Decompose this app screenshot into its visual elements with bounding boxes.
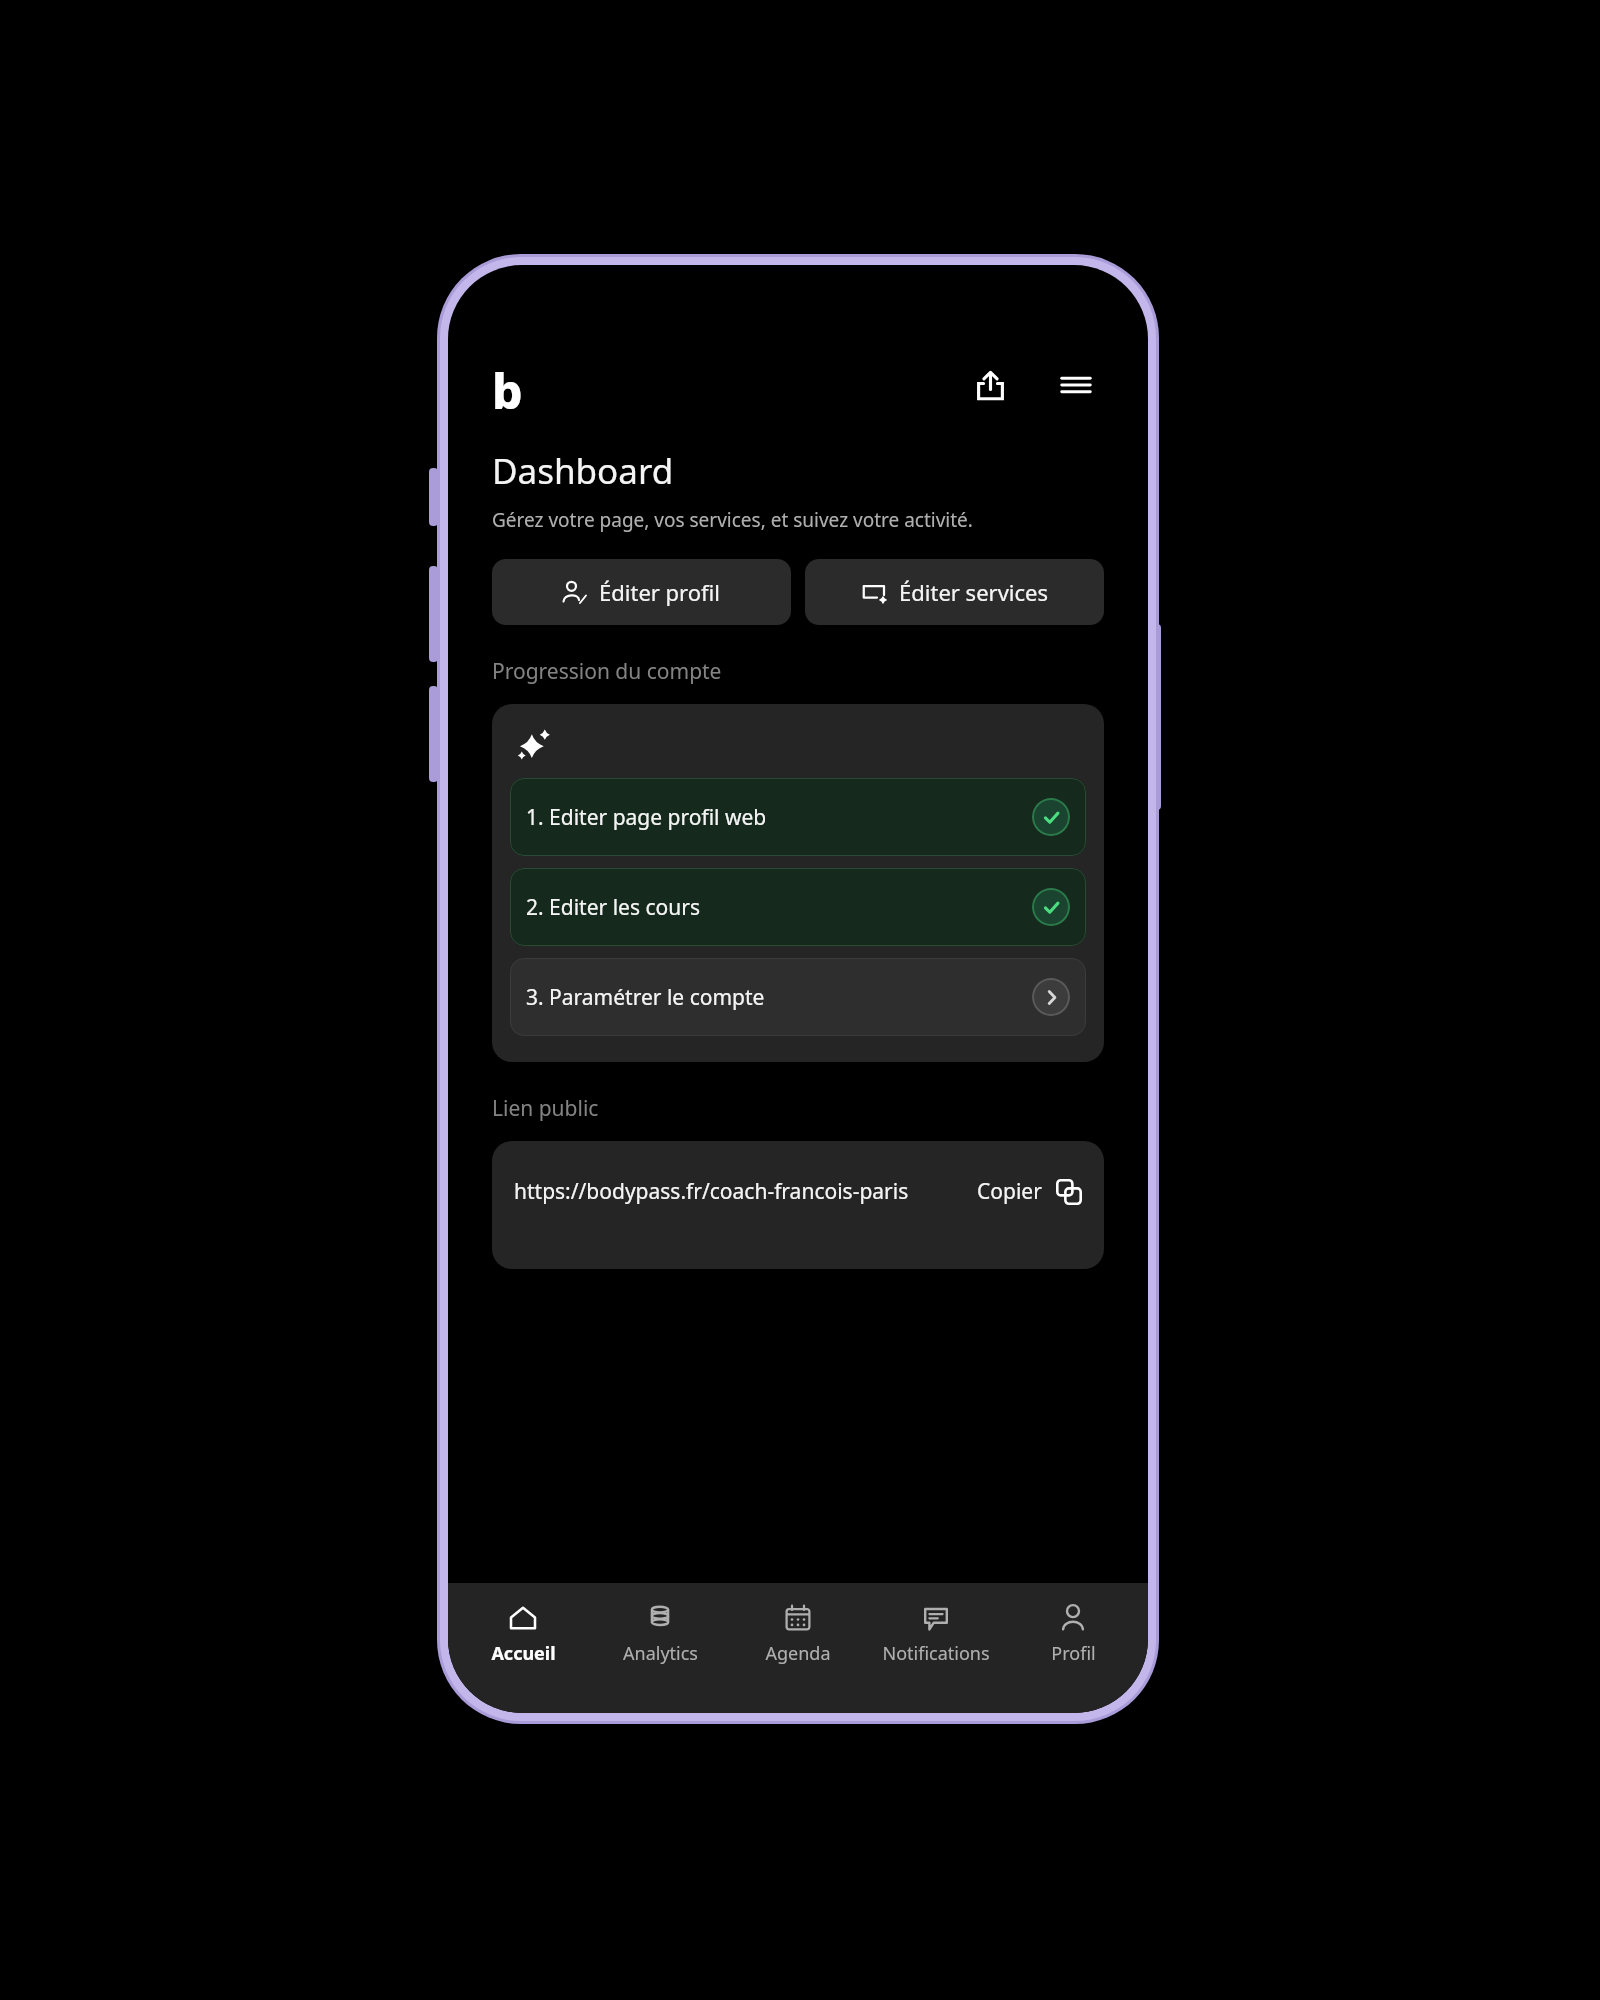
button[interactable]: 2. Editer les cours [510,868,1086,946]
staticText: Progression du compte [492,657,722,686]
button[interactable]: Éditer profil [492,559,791,625]
staticText: https://bodypass.fr/coach-francois-paris [514,1177,909,1206]
staticText: Accueil [491,1641,556,1666]
button[interactable]: Profil [1010,1601,1136,1668]
staticText: Profil [1051,1641,1096,1666]
button[interactable]: Éditer services [805,559,1104,625]
button[interactable]: Notifications [873,1601,999,1668]
staticText: Lien public [492,1094,599,1123]
staticText: Analytics [623,1641,698,1666]
button[interactable]: Accueil [460,1601,586,1668]
button[interactable]: Analytics [597,1601,723,1668]
staticText: Notifications [882,1641,990,1666]
button[interactable]: Bodypass [492,358,546,412]
staticText: Copier [977,1177,1042,1206]
button[interactable]: https://bodypass.fr/coach-francois-paris [492,1141,1104,1269]
staticText: 1. Editer page profil web [526,803,767,832]
button[interactable]: Partager [962,357,1018,413]
staticText: Gérez votre page, vos services, et suive… [492,507,973,533]
button[interactable]: 1. Editer page profil web [510,778,1086,856]
staticText: Dashboard [492,447,674,495]
staticText: 3. Paramétrer le compte [526,983,765,1012]
staticText: Agenda [765,1641,831,1666]
staticText: 2. Editer les cours [526,893,700,922]
staticText: b [492,358,523,412]
button[interactable]: 3. Paramétrer le compte [510,958,1086,1036]
button[interactable]: Menu [1048,357,1104,413]
button[interactable]: Agenda [735,1601,861,1668]
staticText: Éditer services [899,577,1048,607]
staticText: Éditer profil [599,577,721,607]
